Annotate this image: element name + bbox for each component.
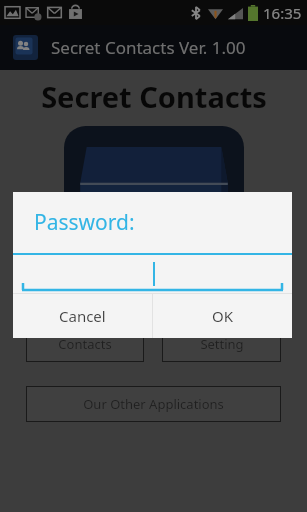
- staticText: Secret Contacts Ver. 1.00: [51, 36, 246, 59]
- button[interactable]: Our Other Applications: [27, 387, 280, 421]
- staticText: Our Other Applications: [83, 395, 224, 413]
- staticText: OK: [212, 306, 234, 326]
- staticText: Setting: [200, 335, 244, 353]
- staticText: Contacts: [58, 335, 112, 353]
- staticText: Password:: [34, 208, 135, 237]
- button[interactable]: Password input field: [13, 255, 292, 293]
- button[interactable]: Cancel: [13, 294, 152, 338]
- staticText: 16:35: [263, 3, 302, 23]
- button[interactable]: Contacts: [27, 327, 143, 361]
- staticText: Secret Contacts: [41, 77, 267, 116]
- button[interactable]: OK: [153, 294, 292, 338]
- button[interactable]: Setting: [163, 327, 280, 361]
- staticText: Cancel: [59, 306, 106, 326]
